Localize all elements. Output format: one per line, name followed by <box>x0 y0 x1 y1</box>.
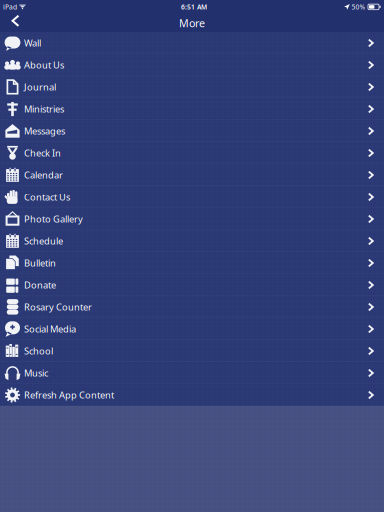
staticText: Refresh App Content <box>24 389 114 401</box>
button[interactable]: Back <box>2 14 30 32</box>
button[interactable]: Music <box>0 362 384 384</box>
staticText: Wall <box>24 37 41 49</box>
button[interactable]: Photo Gallery <box>0 208 384 230</box>
staticText: Music <box>24 367 48 379</box>
button[interactable]: Ministries <box>0 98 384 120</box>
staticText: Donate <box>24 279 56 291</box>
button[interactable]: Contact Us <box>0 186 384 208</box>
button[interactable]: Journal <box>0 76 384 98</box>
button[interactable]: Calendar <box>0 164 384 186</box>
button[interactable]: Check In <box>0 142 384 164</box>
button[interactable]: Messages <box>0 120 384 142</box>
button[interactable]: Donate <box>0 274 384 296</box>
staticText: Social Media <box>24 323 76 335</box>
button[interactable]: Wall <box>0 32 384 54</box>
staticText: Messages <box>24 125 65 137</box>
staticText: Bulletin <box>24 257 56 269</box>
staticText: Ministries <box>24 103 64 115</box>
staticText: About Us <box>24 59 64 71</box>
staticText: Check In <box>24 147 61 159</box>
staticText: School <box>24 345 53 357</box>
staticText: More <box>179 16 205 30</box>
staticText: Schedule <box>24 235 63 247</box>
button[interactable]: Schedule <box>0 230 384 252</box>
staticText: Photo Gallery <box>24 213 83 225</box>
staticText: Contact Us <box>24 191 70 203</box>
staticText: iPad <box>3 3 17 11</box>
staticText: 6:51 AM <box>181 3 207 11</box>
staticText: Calendar <box>24 169 63 181</box>
staticText: Rosary Counter <box>24 301 92 313</box>
staticText: Journal <box>24 81 56 93</box>
button[interactable]: Rosary Counter <box>0 296 384 318</box>
button[interactable]: Refresh App Content <box>0 384 384 406</box>
button[interactable]: School <box>0 340 384 362</box>
button[interactable]: About Us <box>0 54 384 76</box>
staticText: 50% <box>352 3 366 11</box>
button[interactable]: Social Media <box>0 318 384 340</box>
button[interactable]: Bulletin <box>0 252 384 274</box>
